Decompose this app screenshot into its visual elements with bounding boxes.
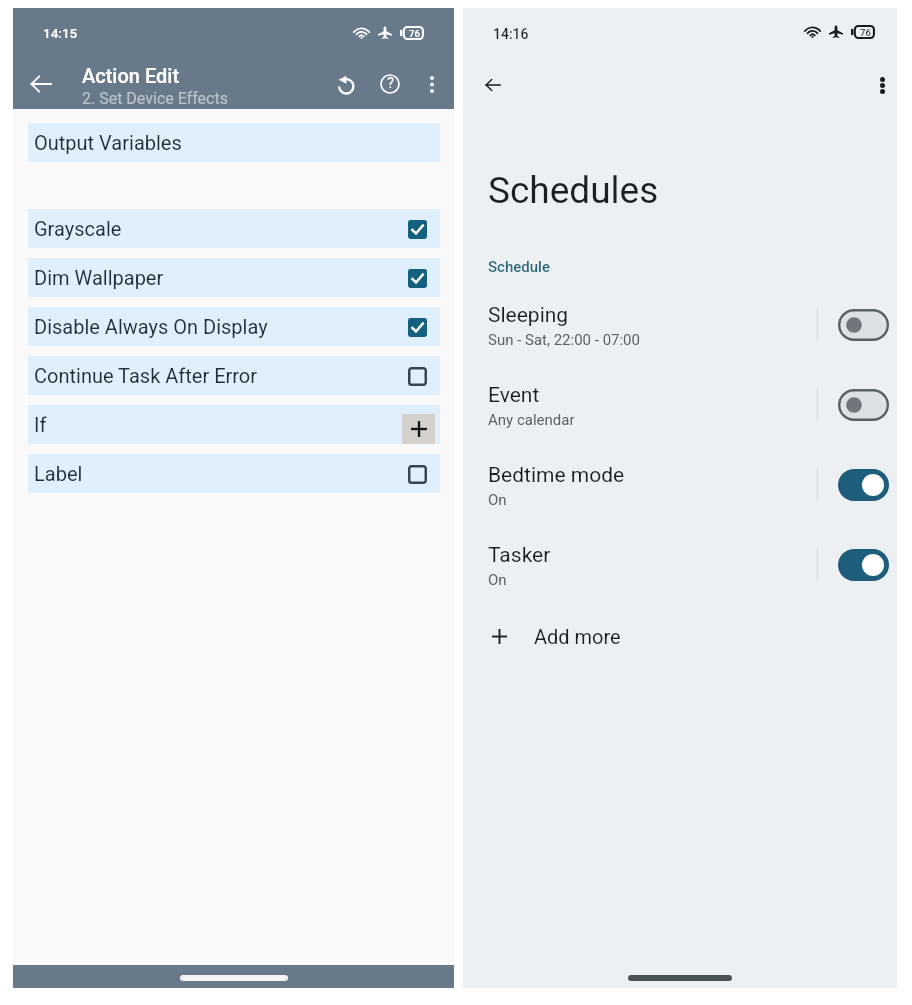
staticText: 76: [409, 28, 420, 39]
button[interactable]: More options: [412, 64, 452, 104]
staticText: Schedule: [488, 258, 550, 276]
button[interactable]: Tasker: [463, 529, 897, 609]
button[interactable]: Dim Wallpaper: [28, 258, 440, 297]
button[interactable]: Add: [402, 414, 435, 444]
staticText: 2. Set Device Effects: [82, 89, 228, 108]
button[interactable]: Off: [838, 389, 889, 421]
button[interactable]: Grayscale: [28, 209, 440, 248]
button[interactable]: Label: [28, 454, 440, 493]
button[interactable]: Event: [463, 369, 897, 449]
staticText: Grayscale: [34, 217, 122, 240]
staticText: ?: [387, 75, 394, 91]
button[interactable]: On: [838, 549, 889, 581]
staticText: 76: [860, 27, 871, 38]
staticText: Tasker: [488, 543, 551, 568]
button[interactable]: More options: [849, 61, 897, 109]
staticText: Event: [488, 383, 540, 408]
staticText: Any calendar: [488, 411, 575, 429]
staticText: Continue Task After Error: [34, 364, 258, 387]
staticText: Action Edit: [82, 64, 180, 87]
button[interactable]: Back: [469, 61, 517, 109]
staticText: Add more: [534, 625, 621, 648]
staticText: On: [488, 491, 507, 509]
staticText: Sun - Sat, 22:00 - 07:00: [488, 331, 640, 349]
button[interactable]: Help: [368, 62, 412, 106]
button[interactable]: If: [28, 405, 440, 444]
button[interactable]: Bedtime mode: [463, 449, 897, 529]
button[interactable]: Undo: [323, 62, 367, 106]
button[interactable]: Checked: [403, 264, 431, 292]
button[interactable]: Disable Always On Display: [28, 307, 440, 346]
staticText: If: [34, 413, 47, 436]
staticText: 14:16: [493, 26, 529, 42]
staticText: Output Variables: [34, 131, 182, 154]
button[interactable]: Unchecked: [403, 460, 431, 488]
button[interactable]: Sleeping: [463, 289, 897, 369]
staticText: Dim Wallpaper: [34, 266, 164, 289]
button[interactable]: Add more: [463, 603, 897, 669]
staticText: 14:15: [43, 25, 78, 41]
button[interactable]: Checked: [403, 313, 431, 341]
staticText: Schedules: [488, 169, 659, 212]
staticText: Label: [34, 462, 83, 485]
staticText: Sleeping: [488, 303, 569, 328]
staticText: Bedtime mode: [488, 463, 625, 488]
button[interactable]: Back: [13, 56, 69, 112]
staticText: Disable Always On Display: [34, 315, 268, 338]
staticText: On: [488, 571, 507, 589]
button[interactable]: On: [838, 469, 889, 501]
button[interactable]: Continue Task After Error: [28, 356, 440, 395]
button[interactable]: Unchecked: [403, 362, 431, 390]
button[interactable]: Output Variables: [28, 123, 440, 162]
button[interactable]: Checked: [403, 215, 431, 243]
button[interactable]: Off: [838, 309, 889, 341]
